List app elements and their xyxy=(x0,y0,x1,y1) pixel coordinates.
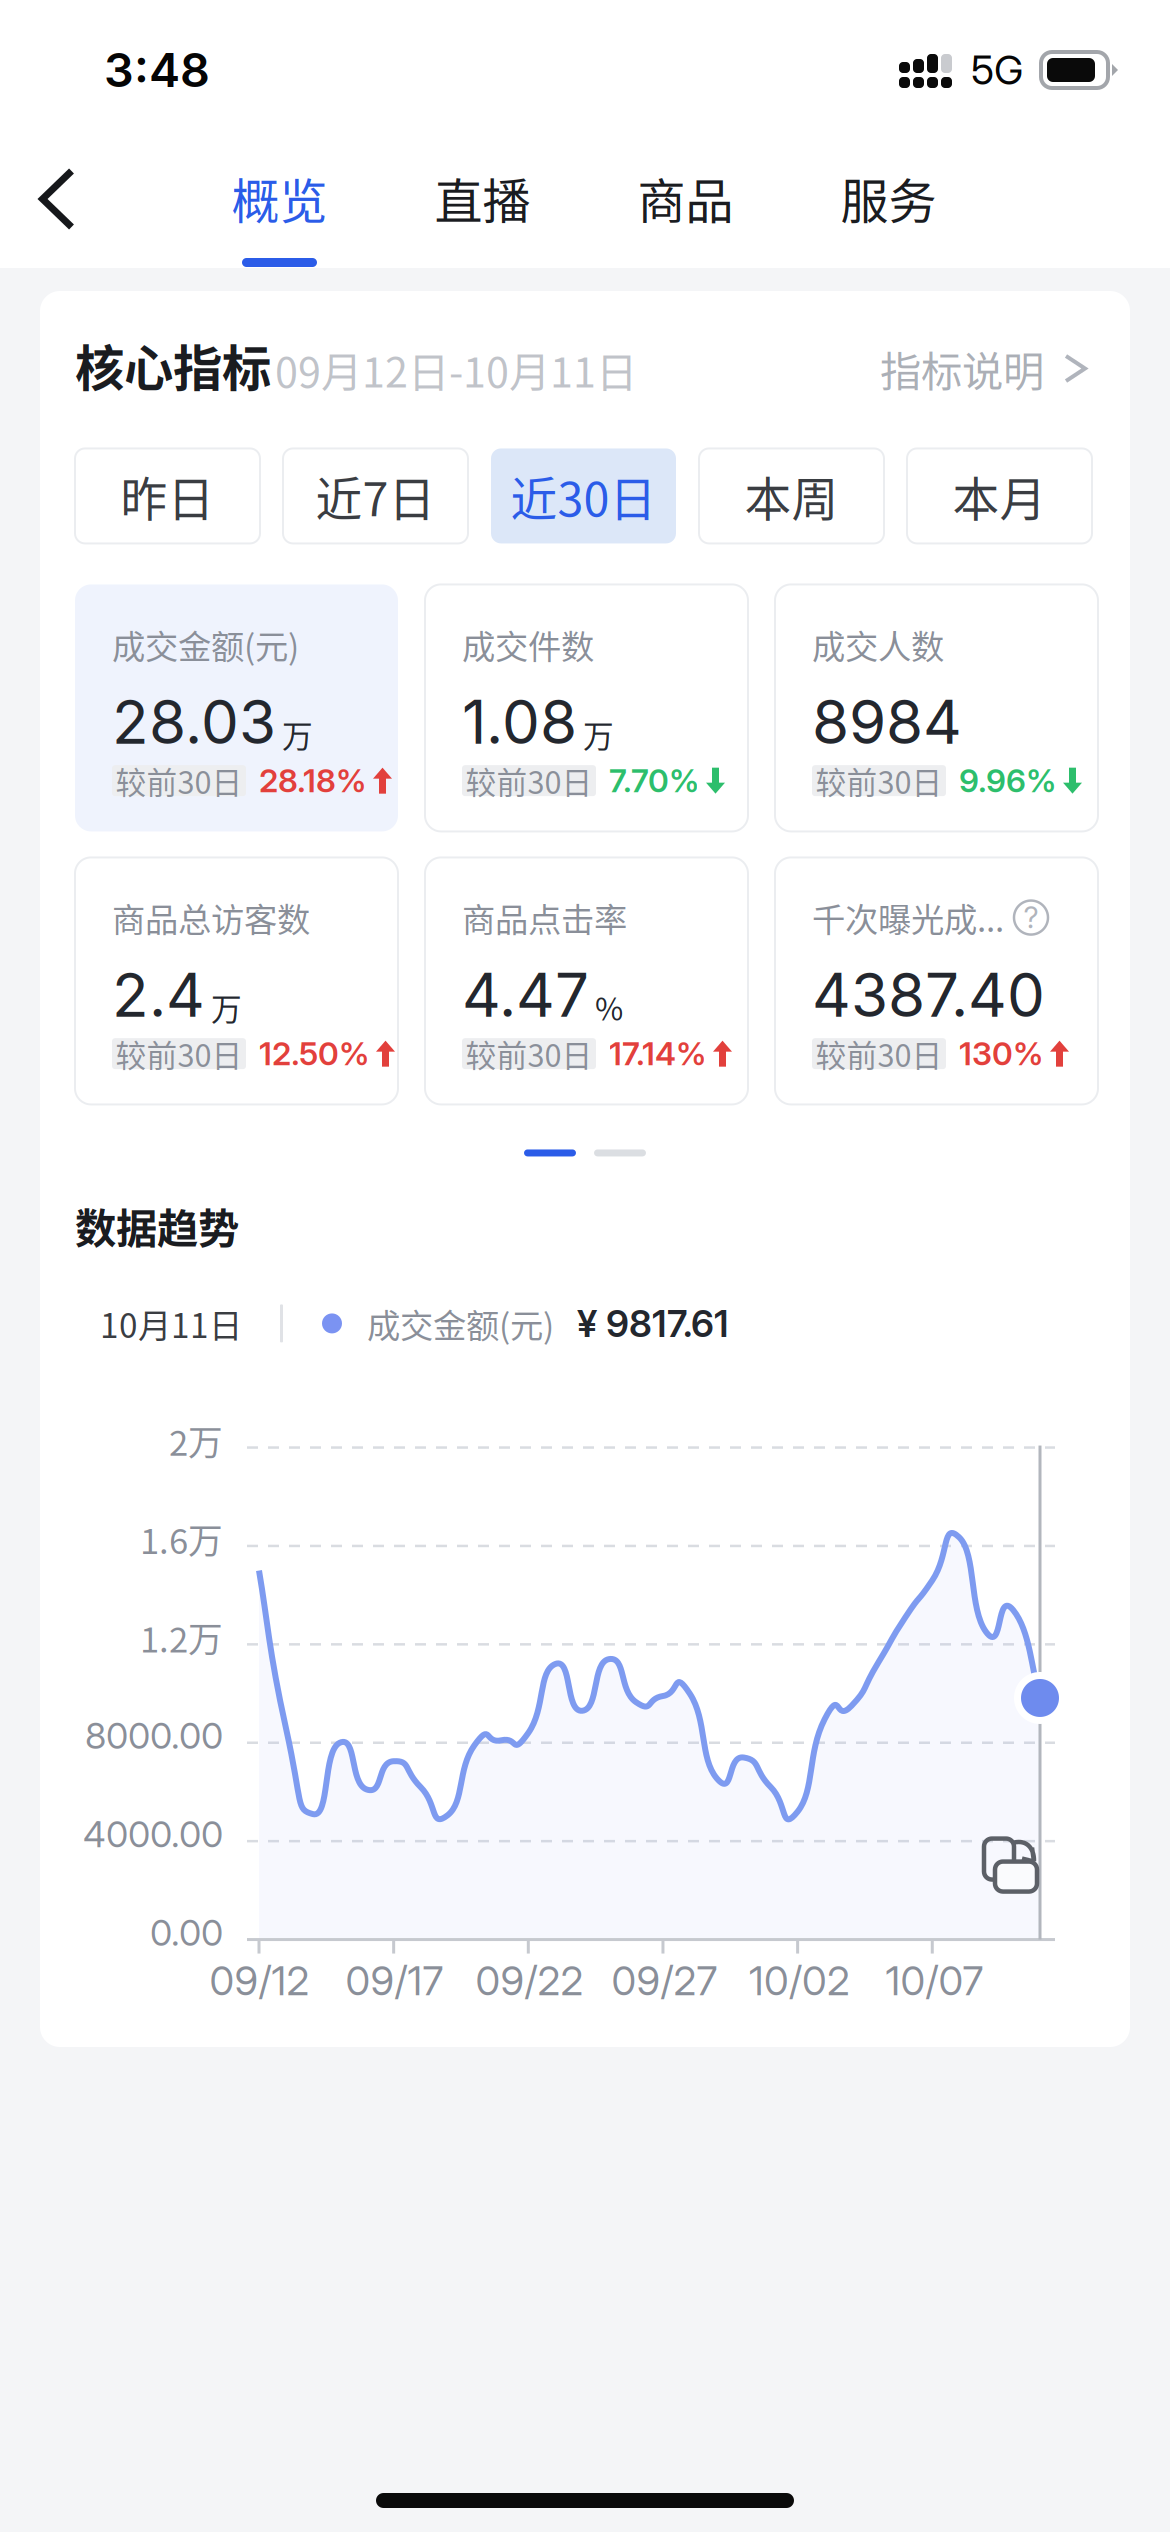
staticText: 指标说明 xyxy=(880,339,1044,398)
button[interactable]: Expand chart xyxy=(984,1839,1037,1892)
staticText: 2.4 xyxy=(112,959,205,1031)
button[interactable]: 昨日 xyxy=(75,448,260,543)
staticText: 较前30日 xyxy=(115,758,242,803)
staticText: 较前30日 xyxy=(115,1031,242,1076)
staticText: 商品 xyxy=(637,163,733,232)
button[interactable]: 成交金额(元) xyxy=(75,584,398,831)
staticText: 09月12日-10月11日 xyxy=(275,340,637,399)
staticText: 较前30日 xyxy=(815,1031,942,1076)
button[interactable]: Back xyxy=(0,140,114,258)
staticText: 成交人数 xyxy=(812,620,944,669)
staticText: 7.70% xyxy=(609,761,699,800)
staticText: 商品点击率 xyxy=(462,893,627,942)
staticText: 8000.00 xyxy=(85,1714,223,1758)
button[interactable]: 成交人数 xyxy=(775,584,1098,831)
staticText: 10/07 xyxy=(885,1957,983,2005)
staticText: 千次曝光成... xyxy=(812,893,1004,942)
button[interactable]: 服务 xyxy=(787,140,990,268)
staticText: 1.2万 xyxy=(140,1612,223,1662)
staticText: 1.6万 xyxy=(140,1514,223,1564)
staticText: 本月 xyxy=(952,462,1046,530)
staticText: 万 xyxy=(583,712,614,756)
button[interactable]: 商品总访客数 xyxy=(75,857,398,1104)
staticText: 4387.40 xyxy=(812,959,1045,1031)
staticText: ¥ 9817.61 xyxy=(577,1301,729,1346)
button[interactable]: 概览 xyxy=(178,140,381,268)
staticText: 9.96% xyxy=(959,761,1056,800)
staticText: 万 xyxy=(211,985,242,1029)
staticText: 较前30日 xyxy=(465,1031,592,1076)
staticText: 近7日 xyxy=(315,462,435,530)
button[interactable]: 商品点击率 xyxy=(425,857,748,1104)
staticText: 近30日 xyxy=(510,462,656,530)
staticText: 28.18% xyxy=(259,761,366,800)
staticText: 130% xyxy=(959,1034,1043,1073)
staticText: 1.08 xyxy=(462,686,577,758)
button[interactable]: 商品 xyxy=(584,140,787,268)
staticText: 成交件数 xyxy=(462,620,594,669)
staticText: 12.50% xyxy=(259,1034,369,1073)
button[interactable]: 本周 xyxy=(699,448,884,543)
staticText: 28.03 xyxy=(112,686,276,758)
staticText: 4000.00 xyxy=(83,1812,223,1856)
button[interactable]: 成交件数 xyxy=(425,584,748,831)
staticText: 3:48 xyxy=(104,42,210,98)
staticText: 8984 xyxy=(812,686,962,758)
staticText: 17.14% xyxy=(609,1034,706,1073)
staticText: 2万 xyxy=(169,1415,223,1466)
staticText: 商品总访客数 xyxy=(112,893,310,942)
staticText: 成交金额(元) xyxy=(112,620,299,669)
staticText: 核心指标 xyxy=(75,329,271,400)
staticText: 09/27 xyxy=(611,1957,717,2005)
staticText: 较前30日 xyxy=(815,758,942,803)
staticText: 10月11日 xyxy=(100,1299,242,1348)
staticText: 0.00 xyxy=(150,1911,223,1954)
button[interactable]: 近7日 xyxy=(283,448,468,543)
staticText: ? xyxy=(1023,900,1038,935)
staticText: 直播 xyxy=(434,163,530,232)
staticText: 服务 xyxy=(840,163,936,232)
button[interactable]: 本月 xyxy=(907,448,1092,543)
staticText: 09/12 xyxy=(209,1957,309,2005)
staticText: 概览 xyxy=(231,163,327,232)
staticText: 万 xyxy=(282,712,313,756)
button[interactable]: 近30日 xyxy=(491,448,676,543)
staticText: 数据趋势 xyxy=(75,1195,239,1255)
staticText: 本周 xyxy=(744,462,838,530)
button[interactable]: 直播 xyxy=(381,140,584,268)
staticText: 4.47 xyxy=(462,959,589,1031)
staticText: 较前30日 xyxy=(465,758,592,803)
button[interactable]: 指标说明 xyxy=(880,339,1085,400)
staticText: 成交金额(元) xyxy=(367,1299,554,1348)
staticText: 5G xyxy=(971,46,1023,94)
button[interactable]: 千次曝光成... xyxy=(775,857,1098,1104)
staticText: 10/02 xyxy=(749,1957,850,2005)
staticText: % xyxy=(595,985,623,1029)
staticText: 昨日 xyxy=(120,462,214,530)
staticText: 09/17 xyxy=(345,1957,443,2005)
staticText: 09/22 xyxy=(475,1957,583,2005)
